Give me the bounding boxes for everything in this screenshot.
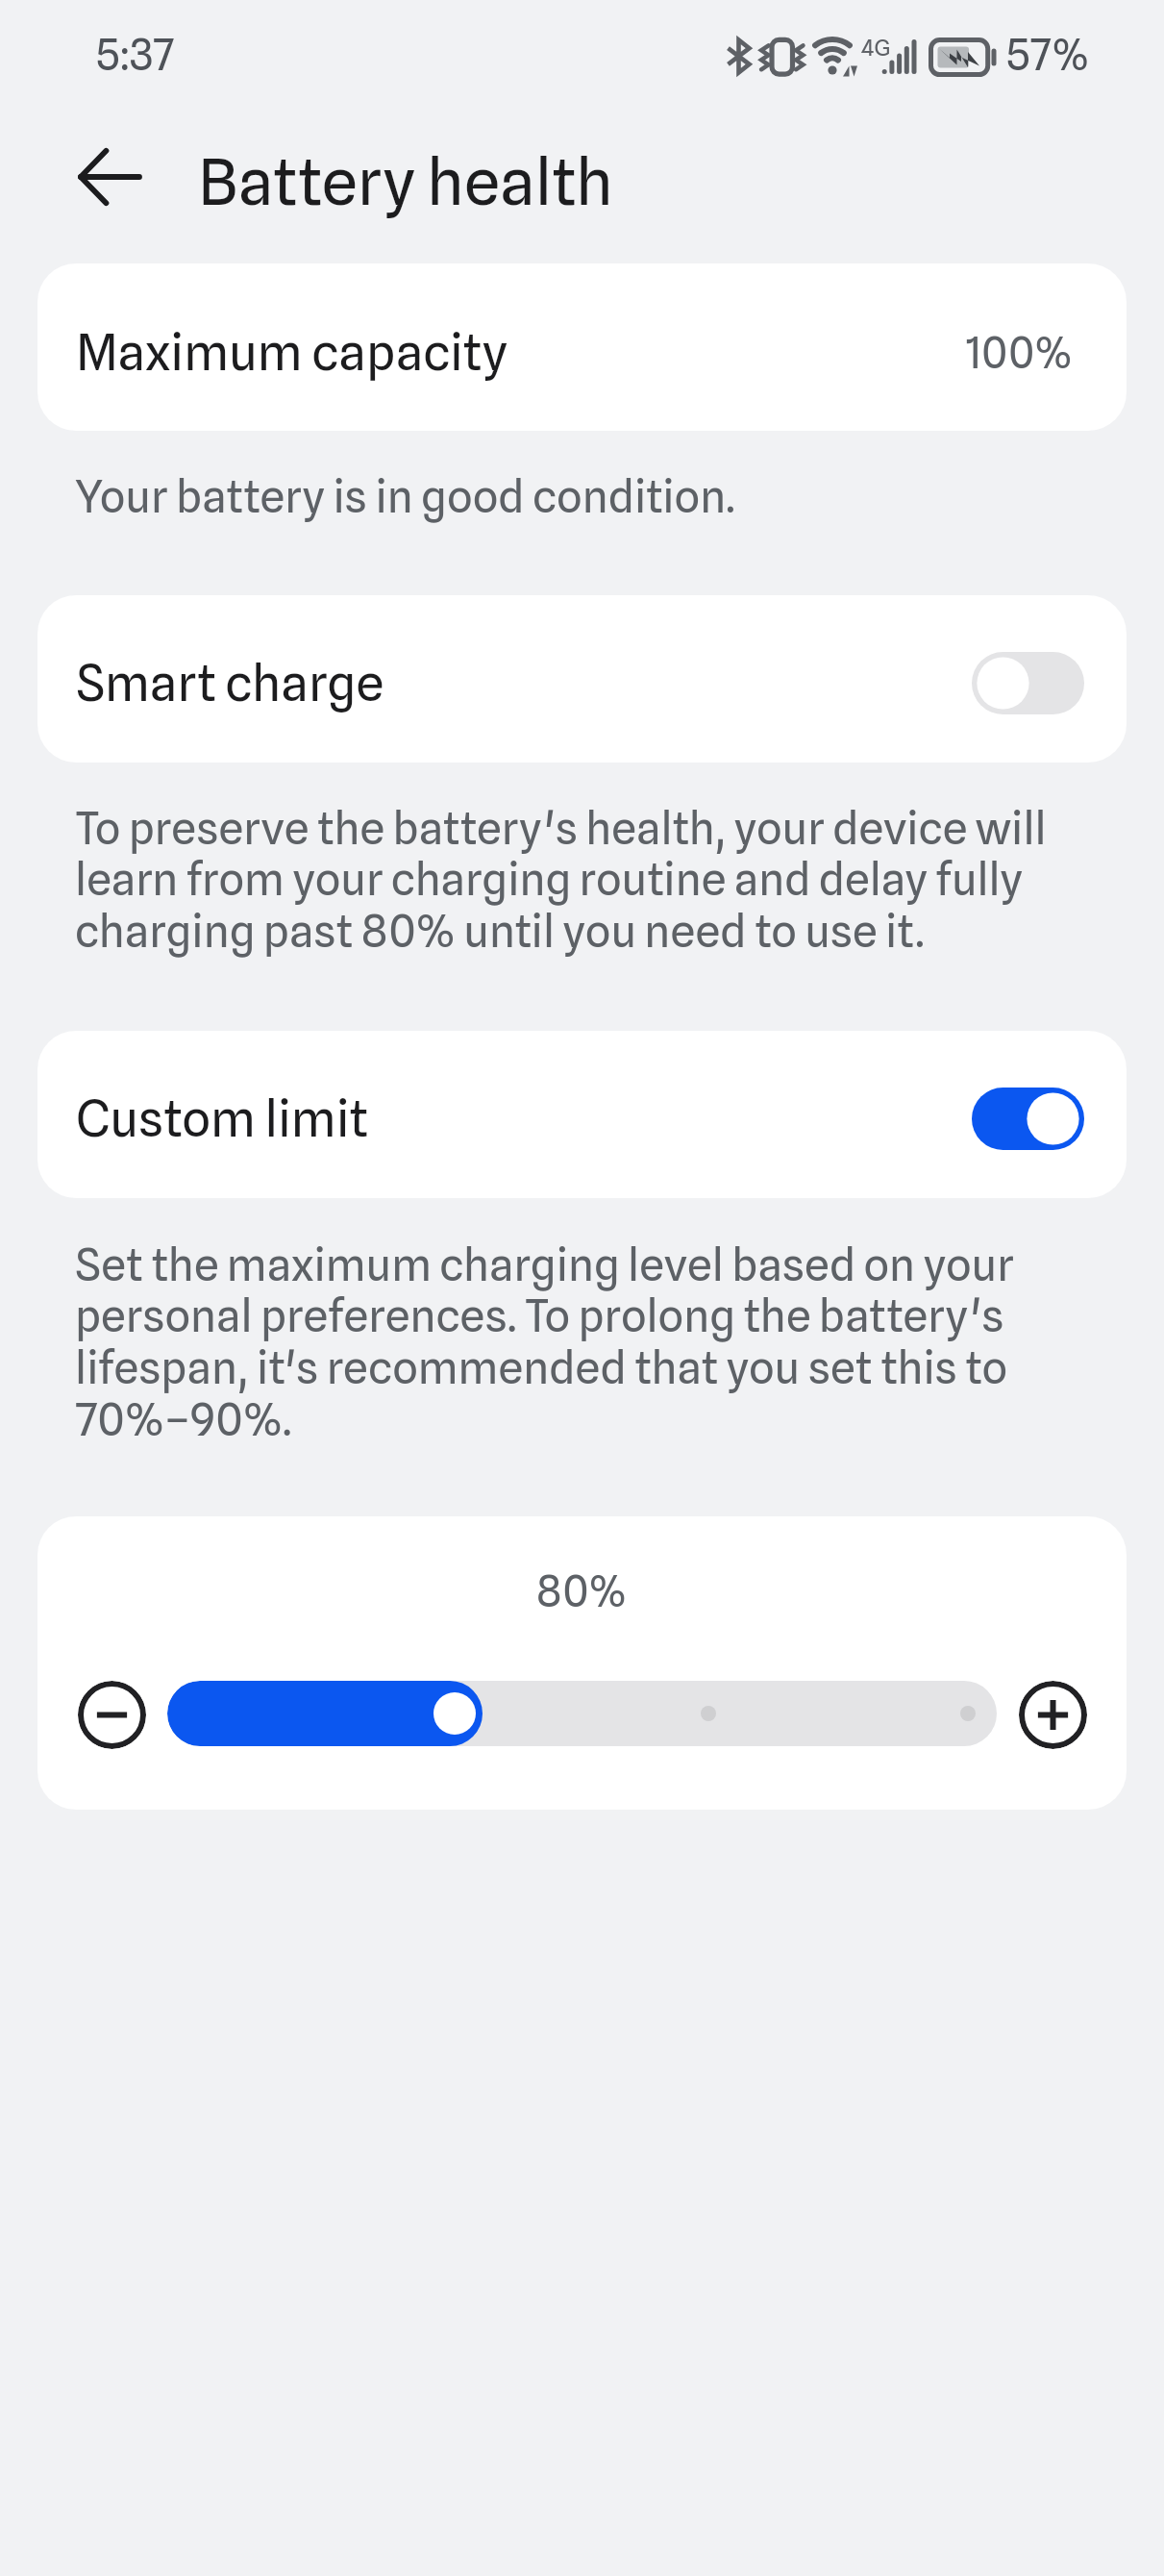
staticText: 100% [965, 327, 1073, 378]
staticText: Smart charge [76, 653, 384, 713]
button[interactable]: Smart charge [37, 595, 1127, 763]
staticText: Set the maximum charging level based on … [75, 1238, 1076, 1446]
staticText: 57% [1006, 30, 1090, 81]
button[interactable]: Back [59, 136, 159, 218]
staticText: 4G [861, 34, 891, 62]
button[interactable]: Custom limit [37, 1031, 1127, 1198]
staticText: To preserve the battery's health, your d… [75, 801, 1076, 958]
staticText: Your battery is in good condition. [75, 469, 735, 523]
button[interactable]: Increase [1019, 1681, 1087, 1749]
staticText: 5:37 [96, 30, 175, 81]
button[interactable]: Maximum capacity [37, 263, 1127, 431]
staticText: 80% [536, 1565, 628, 1616]
button[interactable]: Toggle off [972, 652, 1084, 714]
button[interactable]: Decrease [78, 1681, 146, 1749]
button[interactable]: Toggle on [972, 1088, 1084, 1150]
staticText: Custom limit [76, 1088, 369, 1149]
staticText: Battery health [198, 142, 613, 219]
button[interactable]: Charging limit [167, 1681, 997, 1746]
staticText: Maximum capacity [76, 322, 508, 383]
